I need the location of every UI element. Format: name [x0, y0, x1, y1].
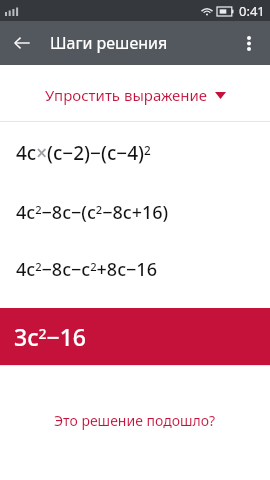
staticText: Упростить выражение [45, 85, 208, 105]
staticText: 4c×(c−2)−(c−4)2 [16, 140, 151, 166]
staticText: Это решение подошло? [54, 411, 216, 430]
button[interactable]: 3c2−16 [0, 308, 270, 365]
staticText: 0:41 [239, 2, 265, 20]
staticText: 3c2−16 [14, 321, 86, 352]
button[interactable]: Упростить выражение [0, 81, 270, 109]
staticText: Шаги решения [50, 32, 168, 54]
staticText: 4c2−8c−(c2−8c+16) [16, 200, 169, 225]
button[interactable]: More options [228, 22, 270, 64]
staticText: 4c2−8c−c2+8c−16 [16, 257, 157, 282]
button[interactable]: Back [0, 21, 44, 65]
button[interactable]: Это решение подошло? [0, 404, 270, 436]
